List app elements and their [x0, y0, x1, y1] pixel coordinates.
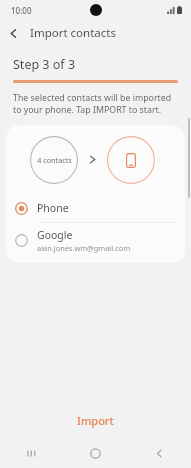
button[interactable]: Recent apps — [0, 438, 63, 468]
staticText: Import contacts — [30, 25, 116, 41]
button[interactable]: Import — [0, 402, 191, 438]
button[interactable]: Phone — [6, 194, 185, 222]
staticText: Step 3 of 3 — [13, 56, 76, 73]
staticText: 4 contacts — [37, 155, 72, 165]
button[interactable]: Home — [63, 438, 127, 468]
staticText: alan.jones.wm@gmail.com — [37, 243, 131, 253]
staticText: 10:00 — [11, 5, 32, 16]
button[interactable]: Google — [6, 223, 185, 257]
staticText: Import — [77, 413, 114, 428]
staticText: The selected contacts will be imported t… — [13, 92, 176, 116]
button[interactable]: Back — [0, 20, 26, 46]
staticText: Phone — [37, 201, 69, 215]
staticText: Google — [37, 228, 73, 242]
button[interactable]: Back — [127, 438, 191, 468]
